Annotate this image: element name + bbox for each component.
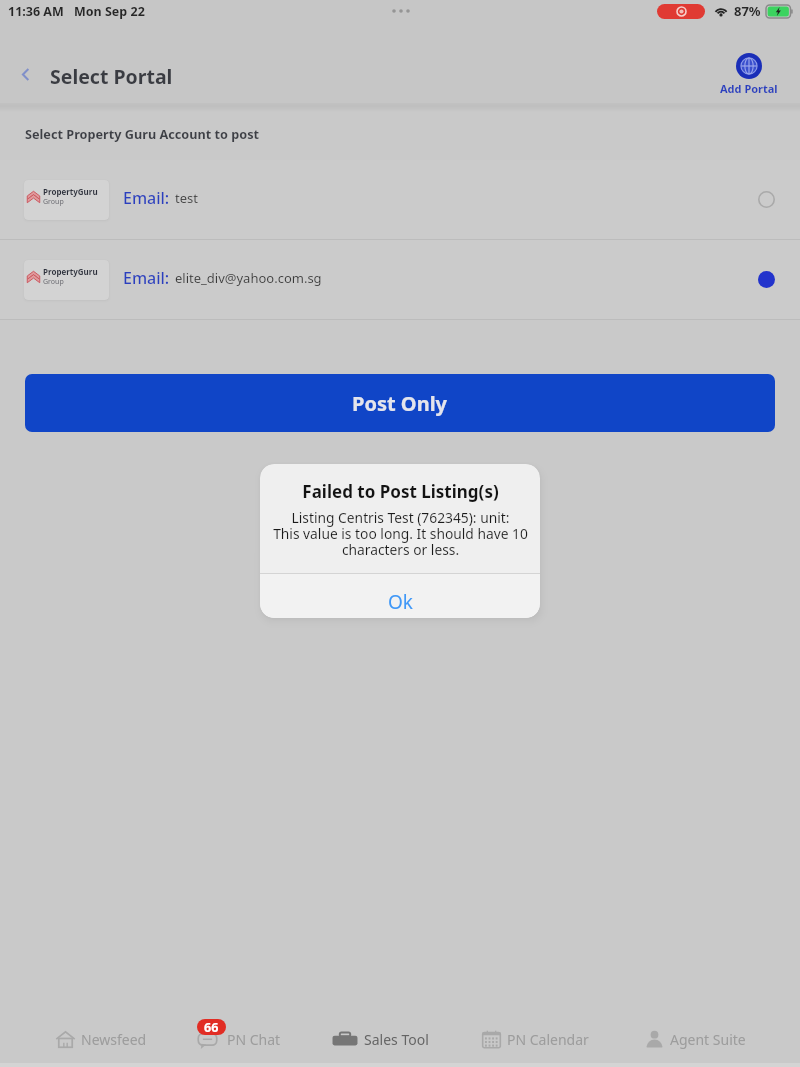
staticText: Group xyxy=(43,197,64,207)
staticText: Select Property Guru Account to post xyxy=(25,125,260,142)
staticText: Select Portal xyxy=(50,63,173,90)
button[interactable]: Ok xyxy=(260,574,540,618)
button[interactable]: Sales Tool xyxy=(332,1029,429,1050)
staticText: Group xyxy=(43,277,64,287)
staticText: PN Calendar xyxy=(507,1030,589,1049)
staticText: PropertyGuru xyxy=(43,186,98,197)
button[interactable]: Post Only xyxy=(25,374,775,432)
button[interactable]: PropertyGuru xyxy=(0,240,800,319)
staticText: Email: xyxy=(123,187,170,209)
staticText: test xyxy=(175,189,198,207)
staticText: Email: xyxy=(123,267,170,289)
button[interactable]: Selected account xyxy=(758,271,775,288)
staticText: Listing Centris Test (762345): unit: Thi… xyxy=(273,508,528,557)
staticText: PN Chat xyxy=(227,1030,281,1049)
staticText: Agent Suite xyxy=(670,1030,746,1049)
staticText: 66 xyxy=(204,1019,219,1035)
staticText: Newsfeed xyxy=(81,1030,147,1049)
staticText: elite_div@yahoo.com.sg xyxy=(175,269,322,287)
button[interactable]: Add Portal xyxy=(716,49,782,100)
staticText: 87% xyxy=(734,2,761,20)
staticText: 11:36 AM xyxy=(8,3,64,20)
button[interactable]: Newsfeed xyxy=(55,1029,147,1050)
staticText: Mon Sep 22 xyxy=(74,3,145,20)
staticText: Failed to Post Listing(s) xyxy=(302,480,499,503)
button[interactable]: Agent Suite xyxy=(644,1029,746,1050)
button[interactable]: Back xyxy=(11,60,39,88)
staticText: Add Portal xyxy=(720,81,778,96)
button[interactable]: PropertyGuru xyxy=(0,160,800,239)
button[interactable]: PN Calendar xyxy=(481,1029,589,1050)
button[interactable]: 66 xyxy=(193,1029,281,1050)
button[interactable]: Select account xyxy=(758,191,775,208)
staticText: PropertyGuru xyxy=(43,266,98,277)
staticText: Post Only xyxy=(352,390,448,417)
staticText: Sales Tool xyxy=(364,1030,429,1049)
staticText: Ok xyxy=(388,589,413,615)
